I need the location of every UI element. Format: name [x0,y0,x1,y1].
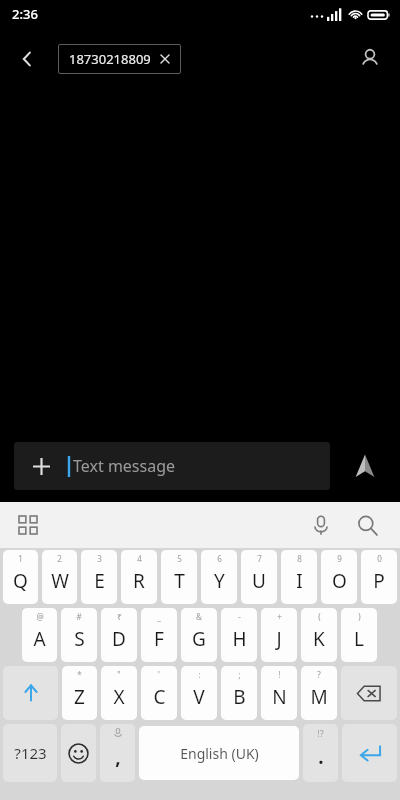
staticText: English (UK) [180,744,259,763]
button[interactable]: Attach [24,449,58,483]
staticText: _ [157,611,161,622]
button[interactable]: : [181,666,217,720]
button[interactable]: @ [22,608,57,662]
staticText: E [94,568,105,594]
staticText: " [117,669,121,680]
staticText: 5 [177,553,182,564]
button[interactable]: ) [341,608,377,662]
button[interactable]: 6 [201,550,237,604]
button[interactable]: Attach [14,442,330,490]
staticText: 0 [377,553,382,564]
staticText: I [296,568,303,594]
staticText: K [313,626,325,652]
button[interactable]: 3 [81,550,117,604]
staticText: 9 [337,553,342,564]
button[interactable]: " [101,666,137,720]
button[interactable]: 2 [42,550,77,604]
button[interactable]: 18730218809 [58,44,181,74]
button[interactable]: English (UK) [139,726,299,780]
button[interactable]: 0 [361,550,397,604]
staticText: 6 [217,553,222,564]
staticText: S [74,626,85,652]
button[interactable]: ₹ [101,608,137,662]
button[interactable]: * [62,666,97,720]
staticText: N [272,684,287,710]
button[interactable]: + [261,608,297,662]
button[interactable]: Enter [342,724,397,782]
staticText: ; [238,669,241,680]
button[interactable]: Send [330,430,400,502]
staticText: W [51,568,69,594]
button[interactable]: 5 [161,550,197,604]
staticText: * [77,669,82,680]
button[interactable]: & [181,608,217,662]
staticText: ! [278,669,281,680]
staticText: X [113,684,125,710]
staticText: A [33,626,46,652]
staticText: !? [317,727,324,739]
staticText: C [153,684,166,710]
button[interactable]: , [100,724,135,782]
staticText: , [115,744,121,770]
staticText: 7 [257,553,262,564]
staticText: 8 [297,553,302,564]
staticText: L [354,626,364,652]
staticText: 1 [18,553,23,564]
staticText: Y [214,568,225,594]
button[interactable]: !? [303,724,338,782]
staticText: 18730218809 [69,50,151,68]
button[interactable]: 1 [3,550,38,604]
staticText: R [133,568,145,594]
staticText: : [198,669,201,680]
button[interactable]: - [221,608,257,662]
staticText: Q [13,568,28,594]
staticText: ' [158,669,160,680]
staticText: V [193,684,205,710]
button[interactable]: Back [6,38,48,80]
staticText: 4 [137,553,142,564]
staticText: ) [358,611,361,622]
button[interactable]: _ [141,608,177,662]
staticText: P [373,568,385,594]
staticText: ?123 [14,743,47,763]
button[interactable]: 9 [321,550,357,604]
button[interactable]: Contact [348,37,392,81]
staticText: # [76,611,82,622]
staticText: F [154,626,164,652]
staticText: Z [74,684,85,710]
staticText: 2 [57,553,62,564]
staticText: M [310,684,328,710]
button[interactable]: Emoji [61,724,96,782]
staticText: O [332,568,347,594]
staticText: T [174,568,185,594]
staticText: 3 [97,553,102,564]
staticText: G [192,626,206,652]
button[interactable]: Search [344,502,390,548]
staticText: & [196,611,202,622]
staticText: D [112,626,126,652]
button[interactable]: Backspace [341,666,397,720]
staticText: 2:36 [12,5,38,23]
staticText: ? [317,669,321,680]
staticText: ₹ [117,611,122,622]
button[interactable]: Voice input [298,502,344,548]
button[interactable]: ' [141,666,177,720]
staticText: Text message [73,455,176,477]
button[interactable]: 7 [241,550,277,604]
button[interactable]: # [61,608,97,662]
staticText: U [252,568,266,594]
staticText: B [233,684,246,710]
button[interactable]: 8 [281,550,317,604]
button[interactable]: Keyboard options [8,505,48,545]
staticText: @ [36,611,44,622]
staticText: . [318,744,324,770]
button[interactable]: ; [221,666,257,720]
button[interactable]: ?123 [3,724,57,782]
staticText: H [232,626,247,652]
button[interactable]: ! [261,666,297,720]
button[interactable]: ( [301,608,337,662]
staticText: + [277,611,282,622]
button[interactable]: Shift [3,666,58,720]
button[interactable]: 4 [121,550,157,604]
button[interactable]: ? [301,666,337,720]
